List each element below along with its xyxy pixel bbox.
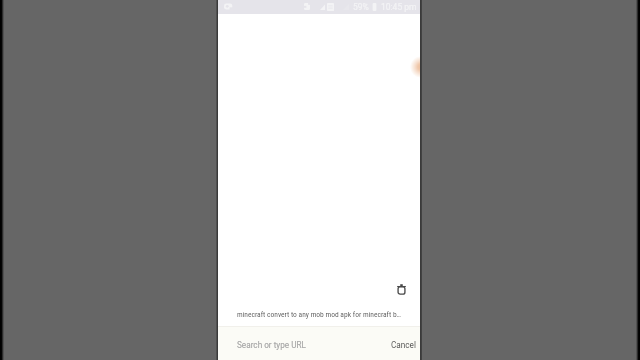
button[interactable]: minecraft convert to any mob mod apk for… <box>218 302 420 326</box>
staticText: 59% <box>353 2 369 12</box>
button[interactable]: Delete <box>393 281 409 297</box>
button[interactable]: Cancel <box>383 330 420 357</box>
staticText: Cancel <box>391 340 416 350</box>
staticText: Search or type URL <box>237 340 383 350</box>
staticText: 10:45 pm <box>381 2 417 12</box>
staticText: minecraft convert to any mob mod apk for… <box>237 310 402 319</box>
